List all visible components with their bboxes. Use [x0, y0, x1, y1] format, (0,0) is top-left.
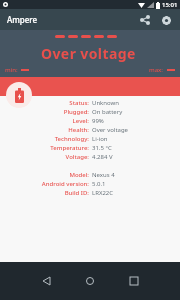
staticText: LRX22C — [92, 189, 114, 197]
staticText: Voltage: — [0, 153, 89, 161]
staticText: Technology: — [0, 135, 89, 143]
staticText: Ampere — [7, 14, 38, 25]
button[interactable] — [138, 13, 152, 27]
staticText: Over voltage — [41, 44, 136, 63]
staticText: max: — [149, 66, 164, 74]
staticText: 15:01 — [162, 1, 178, 9]
button[interactable] — [127, 274, 141, 288]
staticText: 5.0.1 — [92, 180, 106, 188]
staticText: min: — [5, 66, 18, 74]
staticText: 99% — [92, 117, 104, 125]
staticText: Model: — [0, 171, 89, 179]
button[interactable] — [6, 82, 32, 108]
staticText: 4.284 V — [92, 153, 113, 161]
button[interactable] — [159, 13, 173, 27]
staticText: Status: — [0, 99, 89, 107]
staticText: Plugged: — [0, 108, 89, 116]
staticText: Health: — [0, 126, 89, 134]
staticText: Temperature: — [0, 144, 89, 152]
staticText: Android version: — [0, 180, 89, 188]
button[interactable] — [39, 274, 53, 288]
staticText: On battery — [92, 108, 123, 116]
staticText: 31.5 °C — [92, 144, 112, 152]
staticText: Nexus 4 — [92, 171, 115, 179]
staticText: Build ID: — [0, 189, 89, 197]
staticText: Unknown — [92, 99, 119, 107]
staticText: Over voltage — [92, 126, 128, 134]
button[interactable] — [83, 274, 97, 288]
staticText: Level: — [0, 117, 89, 125]
staticText: Li-ion — [92, 135, 108, 143]
